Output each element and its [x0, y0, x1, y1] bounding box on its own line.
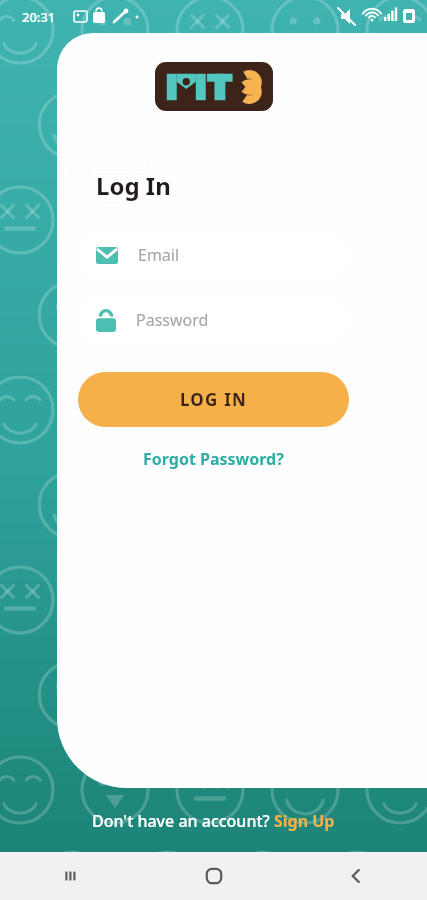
staticText: Email	[138, 244, 180, 266]
button[interactable]: Recent apps	[0, 852, 143, 900]
button[interactable]: Forgot Password?	[135, 444, 292, 474]
staticText: Password	[136, 309, 209, 331]
button[interactable]: Back	[285, 852, 427, 900]
staticText: Don't have an account?	[92, 810, 274, 832]
staticText: Forgot Password?	[143, 448, 284, 470]
staticText: LOG IN	[180, 388, 247, 411]
button[interactable]: Email	[78, 231, 349, 279]
button[interactable]: Home	[143, 852, 285, 900]
button[interactable]: Don't have an account?	[0, 810, 427, 832]
button[interactable]: Password	[78, 296, 349, 344]
staticText: Sign Up	[274, 810, 335, 832]
button[interactable]: LOG IN	[78, 372, 349, 427]
staticText: Log In	[96, 169, 171, 202]
staticText: 20:31	[22, 8, 56, 26]
